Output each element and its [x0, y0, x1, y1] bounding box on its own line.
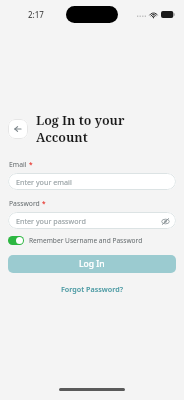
staticText: Enter your email — [16, 177, 72, 187]
staticText: Forgot Password? — [61, 284, 123, 294]
staticText: Log In — [79, 258, 105, 270]
staticText: Email — [9, 160, 27, 169]
staticText: * — [42, 199, 46, 208]
staticText: Log In to your Account — [36, 112, 176, 146]
staticText: * — [29, 160, 33, 169]
button[interactable]: Show password — [160, 216, 170, 226]
button[interactable]: Remember Username and Password — [8, 236, 184, 245]
button[interactable]: Log In — [8, 255, 176, 273]
button[interactable]: Enter your email — [8, 173, 176, 190]
button[interactable]: Back — [8, 119, 28, 139]
staticText: Remember Username and Password — [29, 236, 143, 245]
button[interactable]: Forgot Password? — [57, 282, 127, 296]
staticText: Password — [9, 199, 40, 208]
button[interactable]: Enter your password — [8, 212, 176, 229]
staticText: Enter your password — [16, 216, 86, 226]
staticText: 2:17 — [28, 9, 44, 20]
